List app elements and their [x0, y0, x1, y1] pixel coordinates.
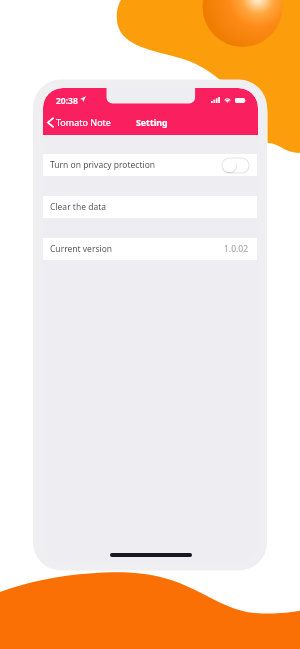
staticText: Current version [50, 243, 113, 255]
staticText: 1.0.02 [224, 243, 249, 255]
button[interactable]: Turn on privacy protection [43, 154, 257, 176]
button[interactable]: Turn on privacy protection [222, 158, 249, 173]
button[interactable]: Tomato Note [45, 114, 113, 130]
button[interactable]: Clear the data [43, 196, 257, 218]
button[interactable]: Current version [43, 238, 257, 260]
staticText: 20:38 [56, 95, 78, 107]
staticText: Setting [136, 117, 168, 129]
staticText: Turn on privacy protection [50, 159, 156, 171]
staticText: Clear the data [50, 201, 107, 213]
staticText: Tomato Note [56, 116, 111, 128]
